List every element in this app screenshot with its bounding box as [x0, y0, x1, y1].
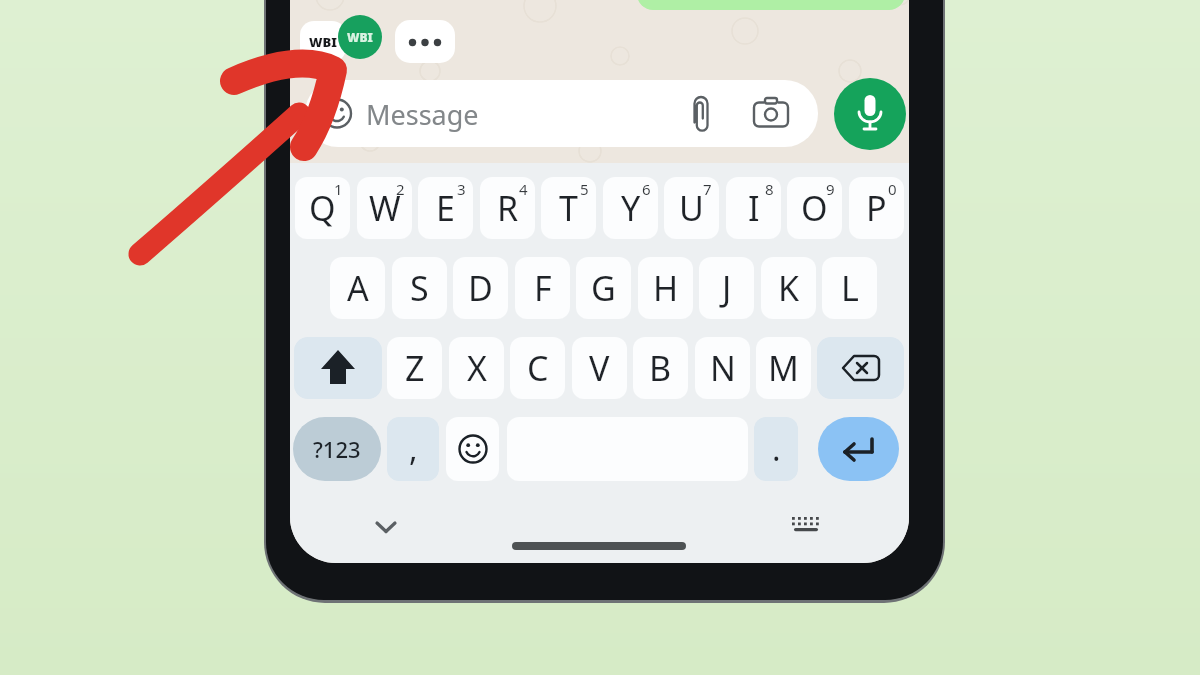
button[interactable]: C [510, 337, 565, 399]
button[interactable]: , [387, 417, 439, 481]
button[interactable] [817, 337, 904, 399]
button[interactable]: G [576, 257, 631, 319]
button[interactable] [834, 78, 906, 150]
button[interactable]: I [726, 177, 781, 239]
button[interactable]: K [761, 257, 816, 319]
button[interactable]: Y [603, 177, 658, 239]
staticText: H [653, 265, 679, 311]
staticText: J [722, 265, 732, 311]
button[interactable]: T [541, 177, 596, 239]
button[interactable]: E [418, 177, 473, 239]
staticText: 0 [888, 179, 897, 199]
staticText: W [369, 185, 401, 231]
staticText: Y [621, 185, 641, 231]
staticText: F [534, 265, 552, 311]
staticText: X [467, 345, 487, 391]
button[interactable] [818, 417, 899, 481]
button[interactable]: U [664, 177, 719, 239]
staticText: 3 [457, 179, 466, 199]
staticText: 7 [703, 179, 712, 199]
staticText: ?123 [313, 434, 361, 464]
staticText: 9 [826, 179, 835, 199]
button[interactable]: M [756, 337, 811, 399]
button[interactable]: O [787, 177, 842, 239]
button[interactable]: S [392, 257, 447, 319]
button[interactable]: ?123 [293, 417, 381, 481]
staticText: Message [366, 96, 479, 133]
staticText: B [649, 345, 672, 391]
button[interactable]: Q [295, 177, 350, 239]
staticText: 6 [642, 179, 651, 199]
button[interactable]: Z [387, 337, 442, 399]
staticText: A [347, 265, 369, 311]
button[interactable]: WBI [300, 21, 346, 62]
staticText: , [409, 427, 418, 471]
staticText: Z [405, 345, 425, 391]
staticText: 5 [580, 179, 589, 199]
staticText: C [527, 345, 549, 391]
button[interactable] [395, 20, 455, 63]
staticText: 1 [334, 179, 343, 199]
staticText: 4 [519, 179, 528, 199]
button[interactable]: P [849, 177, 904, 239]
staticText: WBI [309, 33, 337, 51]
staticText: G [591, 265, 616, 311]
staticText: . [772, 427, 781, 471]
button[interactable]: H [638, 257, 693, 319]
button[interactable]: W [357, 177, 412, 239]
button[interactable]: F [515, 257, 570, 319]
staticText: R [497, 185, 519, 231]
staticText: M [768, 345, 799, 391]
button[interactable]: D [453, 257, 508, 319]
button[interactable]: X [449, 337, 504, 399]
staticText: WBI [347, 29, 373, 45]
staticText: O [801, 185, 828, 231]
staticText: N [710, 345, 736, 391]
staticText: Q [309, 185, 336, 231]
button[interactable]: V [572, 337, 627, 399]
button[interactable]: WBI [338, 15, 382, 59]
staticText: P [866, 185, 887, 231]
button[interactable] [294, 337, 382, 399]
staticText: K [778, 265, 800, 311]
staticText: D [468, 265, 493, 311]
staticText: 8 [765, 179, 774, 199]
staticText: S [410, 265, 429, 311]
staticText: T [559, 185, 578, 231]
staticText: E [436, 185, 455, 231]
staticText: 2 [396, 179, 405, 199]
staticText: U [679, 185, 704, 231]
button[interactable]: A [330, 257, 385, 319]
button[interactable]: B [633, 337, 688, 399]
button[interactable]: J [699, 257, 754, 319]
button[interactable]: R [480, 177, 535, 239]
button[interactable]: N [695, 337, 750, 399]
button[interactable]: . [754, 417, 798, 481]
staticText: L [841, 265, 859, 311]
staticText: I [748, 185, 760, 231]
button[interactable]: Message [305, 80, 818, 147]
button[interactable]: L [822, 257, 877, 319]
staticText: V [589, 345, 610, 391]
button[interactable] [446, 417, 499, 481]
